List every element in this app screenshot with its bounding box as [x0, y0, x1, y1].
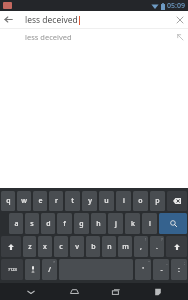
staticText: u	[104, 196, 109, 206]
button[interactable]: k	[125, 213, 140, 234]
button[interactable]: Backspace	[167, 191, 187, 211]
staticText: less deceived	[25, 14, 78, 26]
staticText: n	[107, 242, 112, 252]
button[interactable]: m	[118, 236, 132, 257]
button[interactable]: r	[49, 191, 63, 211]
button[interactable]: Back	[0, 11, 17, 28]
staticText: i	[123, 196, 125, 206]
button[interactable]: /	[42, 259, 57, 280]
button[interactable]: x	[38, 236, 52, 257]
staticText: /	[48, 265, 51, 275]
staticText: ?123	[8, 267, 17, 272]
button[interactable]: ,	[134, 236, 148, 257]
staticText: d	[46, 219, 51, 229]
staticText: less deceived	[25, 32, 172, 42]
staticText: x	[43, 242, 47, 252]
staticText: :	[178, 265, 180, 275]
button[interactable]: less deceived	[0, 29, 188, 45]
button[interactable]: e	[33, 191, 47, 211]
button[interactable]: ?123	[1, 259, 23, 280]
staticText: m	[122, 242, 129, 252]
button[interactable]: -	[153, 259, 169, 280]
staticText: '	[142, 265, 144, 275]
staticText: v	[75, 242, 79, 252]
button[interactable]: '	[135, 259, 151, 280]
button[interactable]: Shift	[166, 236, 187, 257]
button[interactable]: Home	[62, 283, 86, 300]
button[interactable]: Shift	[1, 236, 21, 257]
staticText: o	[138, 196, 143, 206]
button[interactable]: :	[171, 259, 187, 280]
staticText: -	[160, 265, 163, 275]
button[interactable]: l	[142, 213, 157, 234]
staticText: r	[55, 196, 58, 206]
staticText: e	[38, 196, 43, 206]
button[interactable]: o	[133, 191, 148, 211]
button[interactable]: v	[70, 236, 84, 257]
staticText: j	[115, 219, 117, 229]
staticText: .	[156, 242, 158, 252]
staticText: ;	[184, 260, 186, 265]
button[interactable]: Use suggestion	[172, 29, 188, 45]
staticText: _	[166, 260, 168, 265]
staticText: c	[59, 242, 63, 252]
button[interactable]: w	[17, 191, 31, 211]
button[interactable]: p	[150, 191, 165, 211]
staticText: g	[79, 219, 84, 229]
staticText: *	[53, 260, 56, 265]
staticText: z	[28, 242, 32, 252]
button[interactable]: c	[54, 236, 68, 257]
staticText: q	[6, 196, 11, 206]
button[interactable]: a	[9, 213, 23, 234]
button[interactable]: s	[25, 213, 39, 234]
button[interactable]: Voice input	[25, 259, 40, 280]
button[interactable]: d	[41, 213, 55, 234]
staticText: l	[149, 219, 151, 229]
staticText: p	[155, 196, 160, 206]
staticText: k	[131, 219, 135, 229]
staticText: !	[145, 237, 147, 242]
button[interactable]: i	[116, 191, 131, 211]
button[interactable]: b	[86, 236, 100, 257]
button[interactable]: n	[102, 236, 116, 257]
button[interactable]: u	[99, 191, 114, 211]
staticText: t	[71, 196, 74, 206]
button[interactable]: z	[23, 236, 36, 257]
staticText: f	[63, 219, 66, 229]
staticText: "	[148, 260, 150, 265]
staticText: ?	[161, 237, 163, 242]
staticText: a	[14, 219, 19, 229]
button[interactable]: Recent apps	[104, 283, 128, 300]
button[interactable]: Screenshot	[146, 283, 170, 300]
button[interactable]: .	[150, 236, 164, 257]
staticText: s	[30, 219, 34, 229]
button[interactable]: Clear query	[171, 11, 188, 28]
button[interactable]: q	[1, 191, 15, 211]
staticText: w	[21, 196, 27, 206]
button[interactable]: t	[65, 191, 80, 211]
button[interactable]: h	[91, 213, 106, 234]
staticText: ,	[140, 242, 142, 252]
button[interactable]: j	[108, 213, 123, 234]
button[interactable]: y	[82, 191, 97, 211]
button[interactable]: Search	[159, 213, 187, 234]
staticText: b	[91, 242, 96, 252]
staticText: h	[96, 219, 101, 229]
button[interactable]: Hide keyboard	[19, 283, 43, 300]
staticText: y	[88, 196, 92, 206]
button[interactable]: f	[57, 213, 72, 234]
staticText: 05:09	[167, 1, 185, 11]
button[interactable]: g	[74, 213, 89, 234]
